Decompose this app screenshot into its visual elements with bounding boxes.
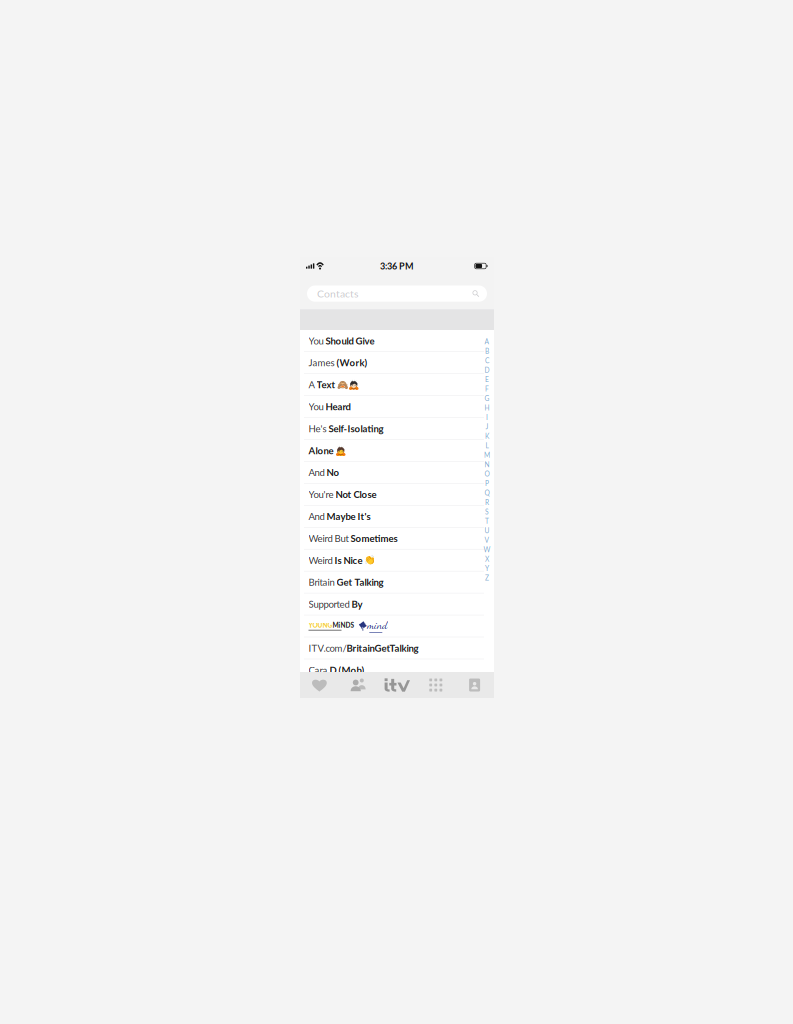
staticText: E xyxy=(485,375,489,383)
button[interactable]: And xyxy=(300,506,494,527)
staticText: YOUNG xyxy=(308,621,332,629)
staticText: No xyxy=(326,467,339,478)
button[interactable]: Weird xyxy=(300,549,494,571)
button[interactable]: Supported xyxy=(300,593,494,615)
staticText: By xyxy=(351,598,362,610)
staticText: MiNDS xyxy=(332,621,354,629)
staticText: A xyxy=(308,379,316,390)
staticText: M xyxy=(484,451,490,459)
button[interactable]: You xyxy=(300,396,494,418)
staticText: Is Nice xyxy=(334,554,362,566)
button[interactable]: He's xyxy=(300,418,494,440)
staticText: Maybe It's xyxy=(326,510,370,522)
staticText: Heard xyxy=(325,401,350,412)
staticText: BritainGetTalking xyxy=(346,642,418,654)
button[interactable]: A xyxy=(300,374,494,396)
staticText: Q xyxy=(484,489,489,497)
button[interactable]: Keypad xyxy=(416,672,455,698)
staticText: K xyxy=(485,432,489,440)
button[interactable]: ITV xyxy=(378,672,416,698)
staticText: O xyxy=(484,470,489,478)
staticText: Alone xyxy=(308,445,333,456)
staticText: G xyxy=(484,394,489,402)
staticText: A xyxy=(484,338,489,346)
button[interactable]: Recents xyxy=(339,672,378,698)
staticText: ITV.com/ xyxy=(308,642,346,654)
staticText: Contacts xyxy=(317,287,359,300)
button[interactable]: Weird But xyxy=(300,527,494,549)
staticText: Supported xyxy=(308,598,351,610)
staticText: U xyxy=(484,527,489,535)
staticText: You xyxy=(308,401,325,412)
button[interactable]: ITV.com/ xyxy=(300,637,494,659)
staticText: 👏 xyxy=(364,555,375,566)
staticText: (Work) xyxy=(336,357,367,368)
button[interactable]: Britain xyxy=(300,571,494,593)
staticText: S xyxy=(485,508,489,516)
button[interactable]: James xyxy=(300,352,494,374)
button[interactable]: Cara xyxy=(300,659,494,681)
staticText: N xyxy=(484,461,489,469)
staticText: You xyxy=(308,335,325,346)
staticText: R xyxy=(485,498,489,506)
staticText: Sometimes xyxy=(350,532,397,544)
staticText: Cara xyxy=(308,664,329,676)
staticText: He's xyxy=(308,423,328,434)
staticText: Weird But xyxy=(308,532,350,544)
staticText: You're xyxy=(308,489,335,500)
staticText: And xyxy=(308,467,326,478)
staticText: Should Give xyxy=(325,335,374,346)
staticText: X xyxy=(485,555,489,563)
staticText: C xyxy=(485,357,489,365)
staticText: J xyxy=(485,423,488,431)
button[interactable]: You xyxy=(300,330,494,352)
staticText: 3:36 PM xyxy=(380,261,414,271)
staticText: 🙈🙇🏻 xyxy=(337,379,359,390)
button[interactable]: Contacts xyxy=(455,672,494,698)
staticText: Get Talking xyxy=(336,576,383,588)
staticText: And xyxy=(308,510,326,522)
staticText: F xyxy=(485,385,489,393)
staticText: T xyxy=(485,517,489,525)
staticText: James xyxy=(308,357,336,368)
staticText: V xyxy=(484,536,489,544)
staticText: Weird xyxy=(308,554,334,566)
staticText: Self-Isolating xyxy=(328,423,383,434)
staticText: P xyxy=(485,479,489,487)
button[interactable]: Favourites xyxy=(300,672,339,698)
staticText: I xyxy=(486,413,488,421)
staticText: W xyxy=(483,546,490,554)
staticText: mind xyxy=(367,619,387,632)
staticText: D (Mob) xyxy=(329,664,364,676)
staticText: Not Close xyxy=(335,489,376,500)
button[interactable]: You're xyxy=(300,484,494,505)
button[interactable]: And xyxy=(300,462,494,484)
staticText: L xyxy=(485,442,488,450)
staticText: H xyxy=(484,404,489,412)
staticText: Y xyxy=(485,564,489,572)
staticText: Text xyxy=(316,379,335,390)
staticText: D xyxy=(484,366,489,374)
staticText: Z xyxy=(485,574,489,582)
staticText: B xyxy=(485,347,489,355)
staticText: Britain xyxy=(308,576,336,588)
button[interactable]: Alone xyxy=(300,440,494,462)
staticText: 🙇 xyxy=(335,445,346,456)
